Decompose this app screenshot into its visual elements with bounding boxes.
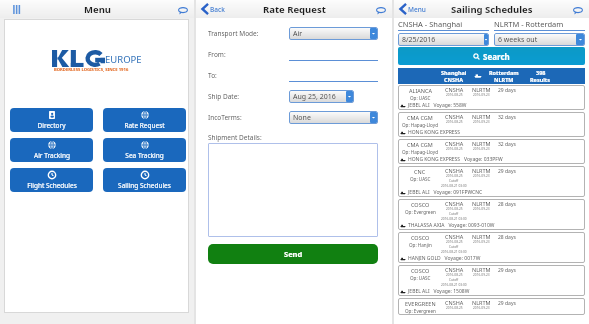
- staticText: NLRTM: [472, 113, 491, 120]
- button[interactable]: COSCO: [398, 265, 585, 296]
- staticText: 8/25/2016: [402, 35, 483, 45]
- button[interactable]: Sailing Schedules: [103, 168, 186, 192]
- staticText: 2016-08-25: [446, 93, 463, 97]
- staticText: Cutoff: [449, 245, 459, 249]
- button[interactable]: Aug 25, 2016: [289, 90, 354, 103]
- staticText: 29 days: [498, 168, 516, 175]
- staticText: ALIANCA: [409, 87, 432, 94]
- staticText: Op: Hanjin: [409, 242, 432, 248]
- staticText: CNSHA: [445, 233, 464, 240]
- staticText: CNSHA: [445, 140, 464, 147]
- staticText: JEBEL ALI Voyage: 1508W: [408, 288, 470, 295]
- staticText: 2016-08-25: [446, 306, 463, 310]
- staticText: 32 days: [498, 141, 516, 148]
- staticText: NLRTM: [472, 200, 491, 207]
- staticText: 29 days: [498, 87, 516, 94]
- staticText: HONG KONG EXPRESS Voyage: 033PFW: [408, 156, 503, 163]
- staticText: CNSHA: [445, 86, 464, 93]
- staticText: Send: [284, 249, 303, 259]
- staticText: Op: Evergreen: [405, 308, 436, 314]
- staticText: CNSHA: [445, 200, 464, 207]
- button[interactable]: Sea Tracking: [103, 138, 186, 162]
- staticText: Op: UASC: [410, 95, 431, 101]
- staticText: Op: UASC: [410, 275, 431, 281]
- staticText: 28 days: [498, 234, 516, 241]
- button[interactable]: 8/25/2016: [398, 33, 489, 46]
- staticText: EVERGREEN: [405, 300, 436, 307]
- staticText: 29 days: [498, 267, 516, 274]
- staticText: NLRTM: [494, 76, 514, 83]
- staticText: JEBEL ALI Voyage: 091FPWCNC: [408, 189, 483, 196]
- button[interactable]: Menu: [399, 3, 426, 15]
- button[interactable]: Back: [201, 3, 225, 15]
- button[interactable]: Chat: [177, 4, 188, 15]
- staticText: Rotterdam: [489, 69, 519, 76]
- button[interactable]: 6 weeks out: [494, 33, 585, 46]
- staticText: EUROPE: [105, 53, 142, 66]
- staticText: 2016-08-25: [446, 147, 463, 151]
- button[interactable]: Flight Schedules: [10, 168, 93, 192]
- staticText: To:: [208, 71, 289, 80]
- staticText: Flight Schedules: [27, 181, 77, 190]
- staticText: Directory: [37, 121, 66, 130]
- button[interactable]: COSCO: [398, 232, 585, 263]
- staticText: 28 days: [498, 201, 516, 208]
- staticText: CNSHA: [445, 113, 464, 120]
- staticText: 2016-08-21 03:00: [441, 250, 467, 254]
- staticText: 2016-08-21 03:00: [441, 217, 467, 221]
- staticText: 2016-08-25: [446, 273, 463, 277]
- button[interactable]: COSCO: [398, 199, 585, 230]
- staticText: NLRTM: [472, 266, 491, 273]
- staticText: Op: Evergreen: [405, 209, 436, 215]
- staticText: NLRTM: [472, 140, 491, 147]
- staticText: 2016-08-21 03:00: [441, 184, 467, 188]
- staticText: Op: Hapag-Lloyd: [402, 149, 438, 155]
- button[interactable]: Menu: [11, 4, 22, 15]
- staticText: 2016-09-23: [473, 93, 490, 97]
- button[interactable]: ALIANCA: [398, 85, 585, 110]
- staticText: 2016-09-23: [473, 306, 490, 310]
- staticText: Air: [293, 29, 369, 39]
- staticText: 2016-09-23: [473, 273, 490, 277]
- staticText: NLRTM: [472, 167, 491, 174]
- button[interactable]: Directory: [10, 108, 93, 132]
- button[interactable]: CMA CGM: [398, 139, 585, 164]
- staticText: Ship Date:: [208, 92, 289, 101]
- button[interactable]: Chat: [572, 4, 583, 15]
- staticText: HANJIN GOLD Voyage: 0017W: [408, 255, 481, 262]
- button[interactable]: Air Tracking: [10, 138, 93, 162]
- button[interactable]: Send: [208, 244, 378, 264]
- button[interactable]: Rate Request: [103, 108, 186, 132]
- staticText: Cutoff: [449, 278, 459, 282]
- staticText: 2016-08-25: [446, 174, 463, 178]
- staticText: IncoTerms:: [208, 113, 289, 122]
- staticText: BORDERLESS LOGISTICS, SINCE 1916: [54, 67, 129, 73]
- button[interactable]: CNC: [398, 166, 585, 197]
- staticText: Rate Request: [124, 121, 165, 130]
- staticText: NLRTM: [472, 233, 491, 240]
- button[interactable]: Search: [398, 47, 585, 65]
- staticText: NLRTM - Rotterdam: [494, 19, 564, 29]
- staticText: HONG KONG EXPRESS: [408, 129, 461, 136]
- staticText: Shanghai: [441, 69, 467, 76]
- staticText: CNSHA: [444, 76, 464, 83]
- staticText: Menu: [84, 3, 111, 16]
- staticText: Air Tracking: [34, 151, 70, 160]
- staticText: Back: [210, 5, 225, 14]
- button[interactable]: EVERGREEN: [398, 298, 585, 315]
- staticText: 398: [536, 69, 546, 76]
- staticText: Aug 25, 2016: [293, 92, 345, 102]
- staticText: From:: [208, 50, 289, 59]
- button[interactable]: None: [289, 111, 378, 124]
- staticText: CNSHA: [445, 299, 464, 306]
- staticText: 2016-08-21 03:00: [441, 283, 467, 287]
- staticText: CNSHA: [445, 167, 464, 174]
- staticText: Sailing Schedules: [451, 3, 533, 16]
- button[interactable]: CMA CGM: [398, 112, 585, 137]
- button[interactable]: Air: [289, 27, 378, 40]
- staticText: 2016-09-23: [473, 207, 490, 211]
- button[interactable]: Chat: [375, 4, 386, 15]
- staticText: COSCO: [411, 234, 430, 241]
- staticText: 2016-09-23: [473, 240, 490, 244]
- staticText: 2016-09-23: [473, 120, 490, 124]
